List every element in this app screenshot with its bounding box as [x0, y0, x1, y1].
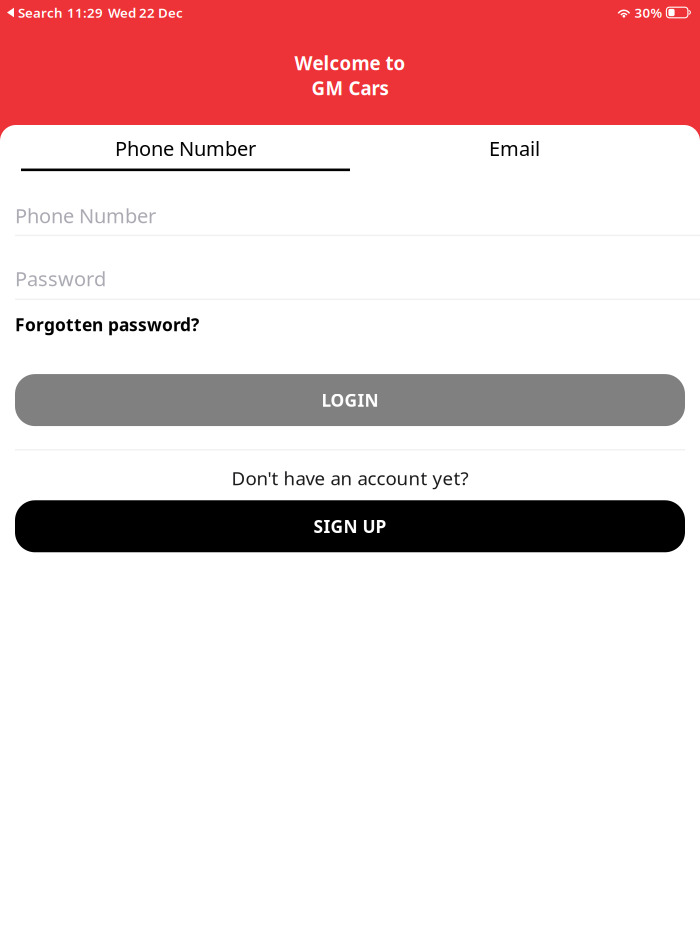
staticText: Welcome to — [294, 51, 405, 75]
button[interactable]: SIGN UP — [15, 500, 685, 552]
button[interactable]: Email — [350, 135, 679, 171]
button[interactable]: Search — [7, 4, 63, 21]
staticText: Wed 22 Dec — [108, 4, 183, 21]
staticText: SIGN UP — [313, 515, 386, 538]
button[interactable]: LOGIN — [15, 374, 685, 426]
staticText: Don't have an account yet? — [231, 465, 468, 490]
button[interactable]: Forgotten password? — [0, 310, 700, 339]
staticText: Forgotten password? — [15, 313, 199, 336]
staticText: Phone Number — [115, 135, 256, 162]
staticText: Phone Number — [15, 202, 156, 229]
staticText: LOGIN — [321, 389, 378, 412]
staticText: GM Cars — [311, 76, 388, 100]
staticText: Email — [489, 135, 540, 162]
staticText: Password — [15, 265, 106, 292]
button[interactable]: Phone Number — [21, 135, 350, 171]
staticText: 30% — [634, 4, 662, 21]
staticText: 11:29 — [67, 4, 103, 21]
staticText: Search — [18, 4, 63, 21]
